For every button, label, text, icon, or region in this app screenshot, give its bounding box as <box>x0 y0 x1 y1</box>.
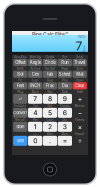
staticText: Del <box>47 104 52 108</box>
button[interactable]: Cen <box>28 71 42 78</box>
staticText: 1 <box>34 123 37 131</box>
staticText: Pipe <box>76 78 83 82</box>
staticText: Div <box>62 118 67 122</box>
button[interactable]: 7 <box>28 94 42 104</box>
staticText: Pkg <box>17 90 23 94</box>
staticText: 6 <box>63 109 67 117</box>
button[interactable]: Store <box>13 122 27 132</box>
staticText: Proj <box>62 78 68 82</box>
staticText: Frac <box>46 83 54 88</box>
staticText: Equal <box>75 132 84 136</box>
button[interactable]: Travel <box>73 59 87 66</box>
staticText: 0 <box>33 137 37 145</box>
button[interactable]: + <box>73 94 87 104</box>
staticText: Times <box>60 104 70 108</box>
staticText: Minus <box>75 104 85 108</box>
staticText: ÷ <box>78 137 82 145</box>
staticText: Recall <box>15 118 25 122</box>
staticText: Cen <box>32 72 39 77</box>
staticText: INCH <box>78 35 85 39</box>
staticText: . <box>49 137 51 145</box>
staticText: Clear <box>75 83 85 88</box>
staticText: 4 <box>33 109 37 117</box>
button[interactable]: Frac <box>43 82 57 89</box>
staticText: Arith <box>17 67 24 70</box>
staticText: 3 <box>63 123 67 131</box>
button[interactable]: − <box>73 108 87 118</box>
button[interactable]: Mat <box>73 71 87 78</box>
staticText: Mat <box>76 72 83 77</box>
button[interactable]: Shift <box>13 136 27 146</box>
staticText: Wrd Ag <box>30 55 41 59</box>
button[interactable]: 8 <box>43 94 57 104</box>
button[interactable]: . <box>43 136 57 146</box>
staticText: Size <box>76 67 83 70</box>
staticText: Run/Dia <box>14 55 26 59</box>
staticText: Travel <box>74 60 85 65</box>
button[interactable]: Clear <box>73 82 87 89</box>
staticText: Offset <box>15 60 25 65</box>
staticText: 8 <box>48 95 52 103</box>
staticText: Sched <box>59 72 71 77</box>
button[interactable]: Bot <box>13 71 27 78</box>
button[interactable]: Offset <box>13 59 27 66</box>
button[interactable]: Feet <box>13 82 27 89</box>
staticText: Circle <box>44 60 55 65</box>
staticText: Dia <box>62 83 68 88</box>
staticText: Convert <box>13 110 27 115</box>
button[interactable]: Fab <box>43 71 57 78</box>
staticText: Store <box>16 124 24 129</box>
staticText: 7 <box>75 39 82 53</box>
staticText: Tol <box>33 104 38 108</box>
button[interactable]: Sched <box>58 71 72 78</box>
staticText: Angle <box>30 60 41 65</box>
button[interactable]: Angle <box>28 59 42 66</box>
button[interactable]: × <box>73 122 87 132</box>
staticText: Fab <box>46 72 53 77</box>
button[interactable]: Circle <box>43 59 57 66</box>
staticText: EstCalc <box>14 104 26 108</box>
button[interactable]: 3 <box>58 122 72 132</box>
staticText: ↵ <box>18 96 22 101</box>
button[interactable]: 2 <box>43 122 57 132</box>
button[interactable]: 4 <box>28 108 42 118</box>
staticText: Bot <box>17 72 23 77</box>
button[interactable]: Dia <box>58 82 72 89</box>
button[interactable]: 5 <box>43 108 57 118</box>
staticText: Len <box>32 78 38 82</box>
staticText: Pipe Calc Elite™ <box>32 31 68 37</box>
staticText: +/− <box>33 132 38 136</box>
staticText: Active <box>30 67 40 70</box>
staticText: Rot <box>47 90 52 94</box>
button[interactable]: 6 <box>58 108 72 118</box>
staticText: Rad <box>47 78 53 82</box>
button[interactable]: 9 <box>58 94 72 104</box>
button[interactable]: = <box>58 136 72 146</box>
staticText: Add <box>77 90 83 94</box>
staticText: Travel <box>74 53 85 58</box>
button[interactable]: Convert <box>13 108 27 118</box>
button[interactable]: ↵ <box>13 94 27 104</box>
button[interactable]: 1 <box>28 122 42 132</box>
staticText: Run <box>61 60 68 65</box>
staticText: − <box>78 109 82 117</box>
staticText: 7 <box>33 95 37 103</box>
staticText: × <box>78 123 82 131</box>
staticText: Dec <box>47 132 53 136</box>
staticText: Fit <box>18 78 22 82</box>
staticText: 5 <box>48 109 52 117</box>
staticText: + <box>78 95 82 103</box>
staticText: Angl <box>76 55 83 59</box>
staticText: INCH <box>30 83 40 88</box>
button[interactable]: ÷ <box>73 136 87 146</box>
button[interactable]: Run <box>58 59 72 66</box>
staticText: Feet <box>17 83 24 88</box>
staticText: Times <box>75 118 85 122</box>
staticText: Cutbk <box>45 55 54 59</box>
button[interactable]: INCH <box>28 82 42 89</box>
button[interactable]: 0 <box>28 136 42 146</box>
staticText: = <box>63 137 67 145</box>
staticText: 9 <box>63 95 67 103</box>
staticText: ArcSet <box>45 67 55 70</box>
staticText: Run <box>62 132 68 136</box>
